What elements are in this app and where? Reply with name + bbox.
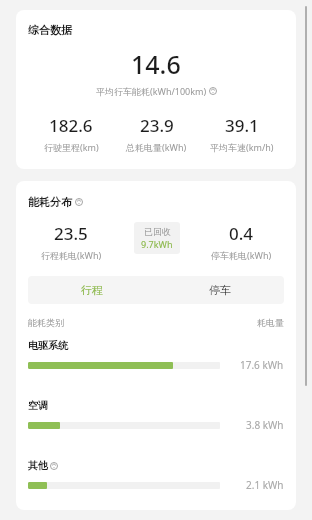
staticText: 其他: [28, 459, 48, 472]
staticText: 23.5: [54, 222, 88, 245]
staticText: 23.9: [140, 114, 174, 137]
staticText: 停车耗电(kWh): [211, 249, 272, 261]
staticText: 182.6: [49, 114, 93, 137]
staticText: 耗电量: [257, 317, 284, 328]
staticText: 3.8 kWh: [246, 418, 284, 432]
staticText: 平均行车能耗(kWh/100km): [96, 85, 207, 97]
staticText: 已回收: [144, 226, 171, 237]
staticText: 9.7kWh: [141, 238, 173, 250]
staticText: 14.6: [131, 47, 181, 81]
staticText: 总耗电量(kWh): [126, 141, 187, 153]
staticText: 行程: [81, 283, 103, 297]
staticText: 停车: [209, 283, 231, 297]
staticText: 平均车速(km/h): [210, 141, 274, 153]
staticText: 综合数据: [28, 23, 72, 37]
button[interactable]: 停车: [156, 276, 284, 304]
staticText: 电驱系统: [28, 339, 68, 352]
staticText: 行程耗电(kWh): [41, 249, 102, 261]
staticText: 17.6 kWh: [240, 358, 284, 372]
staticText: 行驶里程(km): [44, 141, 99, 153]
staticText: 2.1 kWh: [246, 478, 284, 492]
staticText: 能耗分布: [28, 195, 72, 209]
staticText: 空调: [28, 399, 48, 412]
staticText: 0.4: [229, 222, 254, 245]
staticText: 能耗类别: [28, 317, 64, 328]
staticText: 39.1: [225, 114, 259, 137]
button[interactable]: 行程: [28, 276, 156, 304]
